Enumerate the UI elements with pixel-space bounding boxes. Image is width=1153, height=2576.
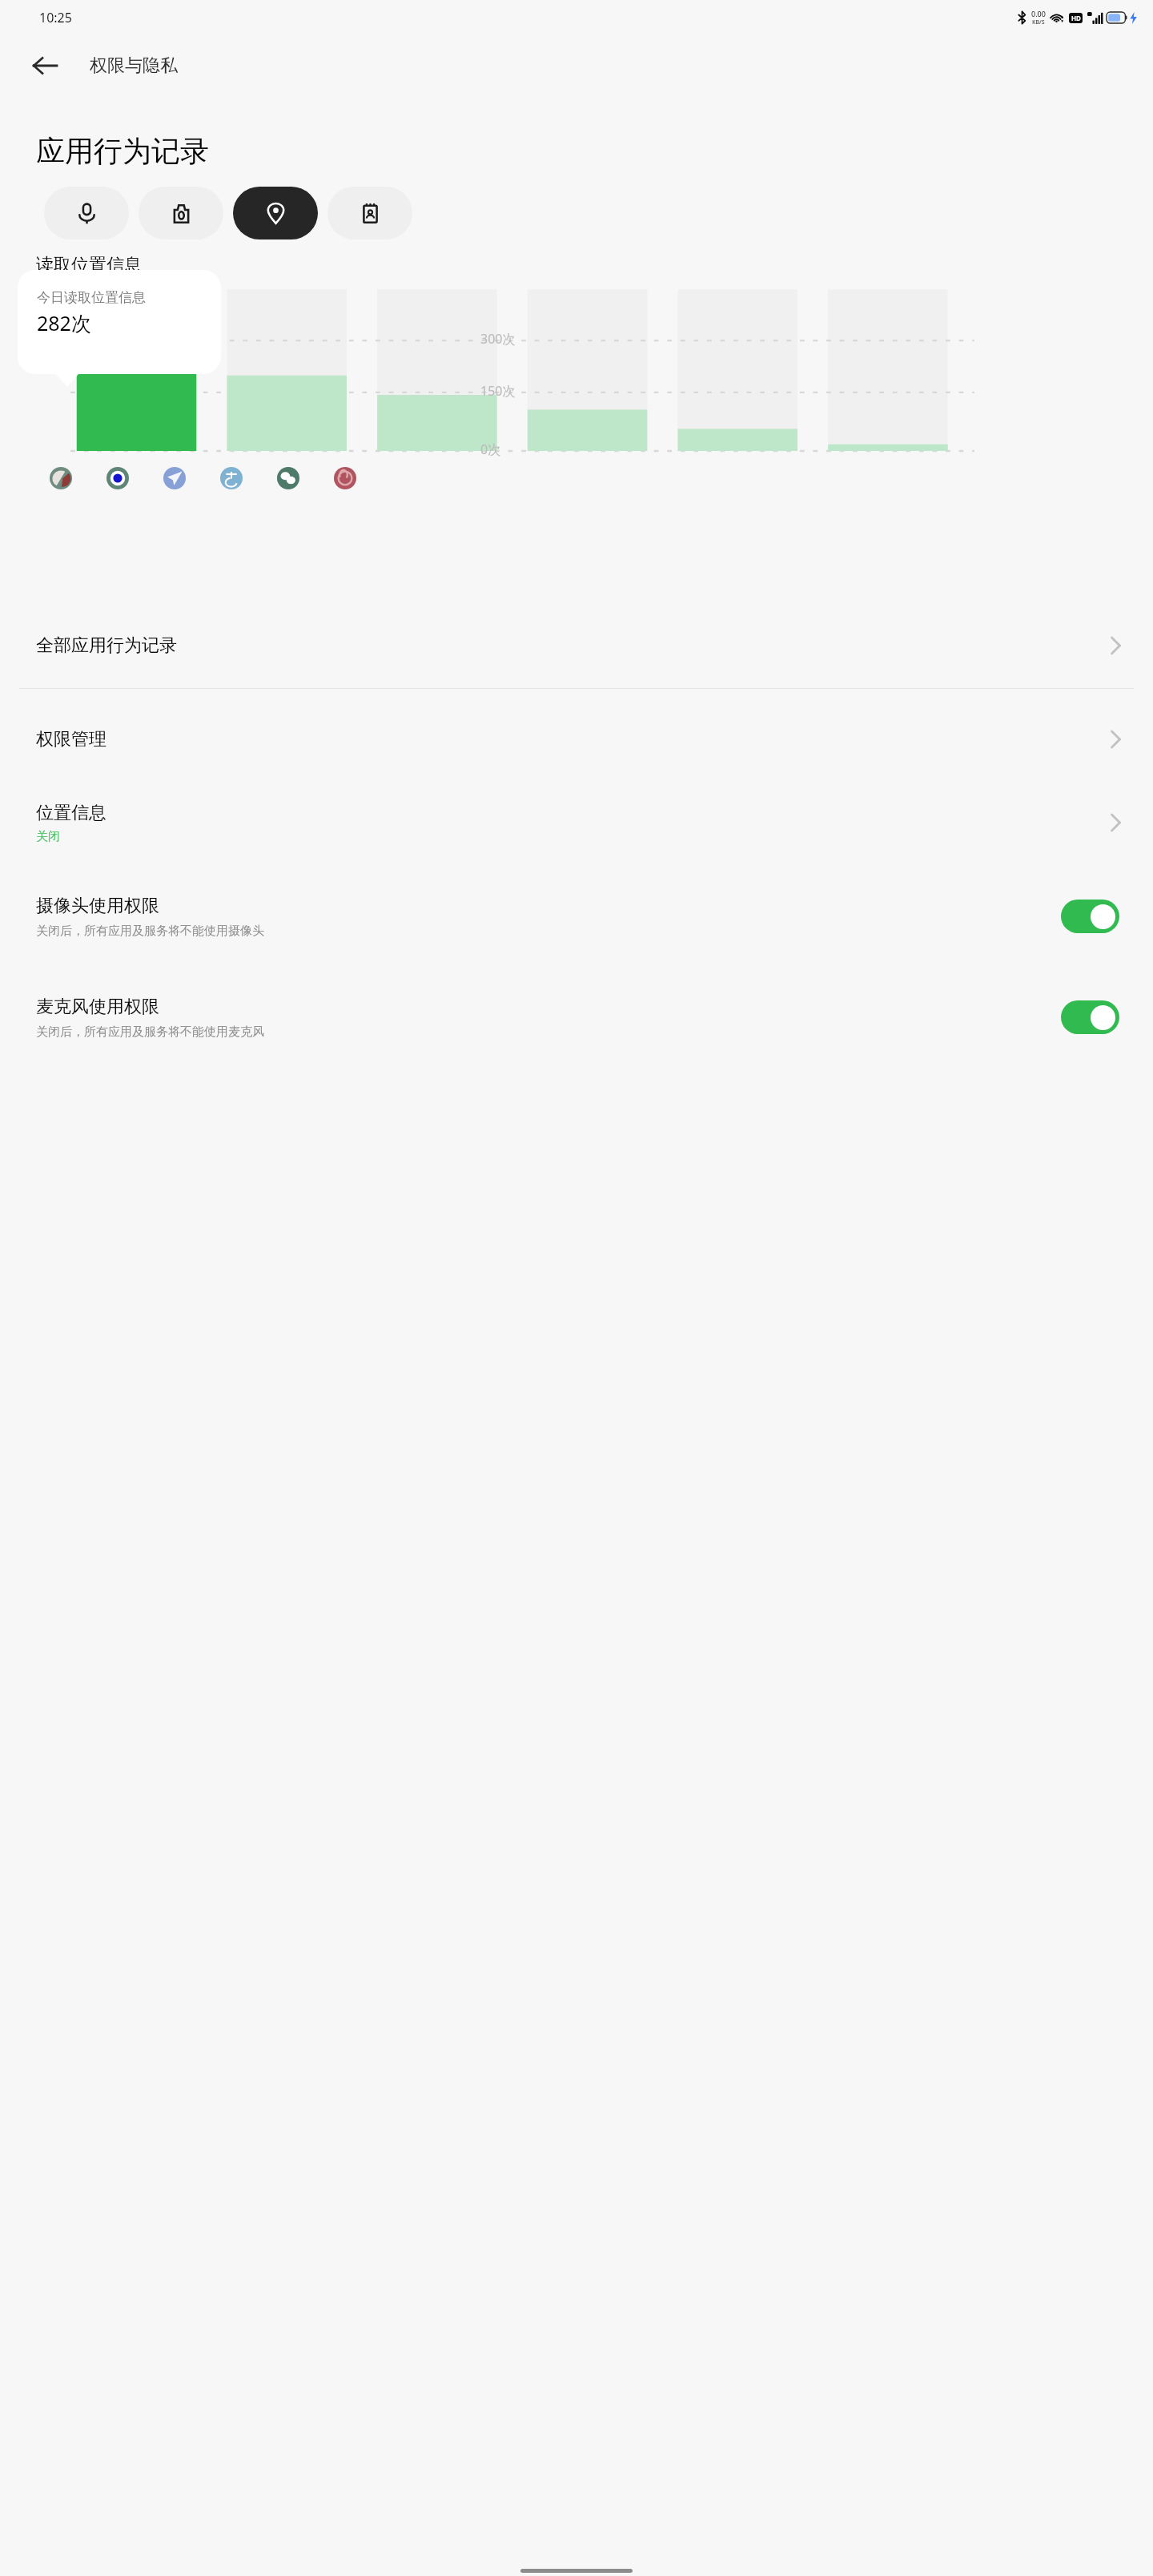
button[interactable]: 全部应用行为记录 xyxy=(0,616,1153,675)
button[interactable]: 摄像头使用权限 xyxy=(0,878,1153,955)
button[interactable]: 位置 xyxy=(233,187,318,239)
staticText: 关闭后，所有应用及服务将不能使用麦克风 xyxy=(36,1024,264,1040)
button[interactable]: 权限类型 xyxy=(327,187,412,239)
button[interactable]: 麦克风使用权限 xyxy=(1061,1000,1119,1034)
staticText: 全部应用行为记录 xyxy=(36,634,177,657)
button[interactable]: 权限管理 xyxy=(0,710,1153,769)
button[interactable]: 位置信息 xyxy=(0,785,1153,860)
staticText: 0次 xyxy=(480,441,501,458)
button[interactable]: 返回 xyxy=(22,43,67,88)
staticText: 权限与隐私 xyxy=(90,54,178,77)
button[interactable]: 麦克风使用权限 xyxy=(0,979,1153,1056)
staticText: HD xyxy=(1071,14,1081,22)
staticText: 关闭后，所有应用及服务将不能使用摄像头 xyxy=(36,924,264,939)
button[interactable]: 权限类型 xyxy=(139,187,223,239)
staticText: 麦克风使用权限 xyxy=(36,996,159,1018)
staticText: 位置信息 xyxy=(36,802,106,824)
staticText: 今日读取位置信息 xyxy=(37,289,146,306)
staticText: 10:25 xyxy=(39,9,72,26)
button[interactable]: 权限类型 xyxy=(44,187,129,239)
staticText: KB/S xyxy=(1032,18,1045,26)
staticText: 应用行为记录 xyxy=(36,133,209,169)
staticText: 0.00 xyxy=(1031,9,1046,18)
staticText: 摄像头使用权限 xyxy=(36,895,159,917)
staticText: 150次 xyxy=(480,382,516,400)
staticText: 关闭 xyxy=(36,829,60,844)
staticText: 读取位置信息 xyxy=(36,254,142,276)
button[interactable]: 摄像头使用权限 xyxy=(1061,900,1119,933)
staticText: 282次 xyxy=(37,309,91,336)
staticText: 300次 xyxy=(480,330,516,348)
staticText: 权限管理 xyxy=(36,728,106,751)
